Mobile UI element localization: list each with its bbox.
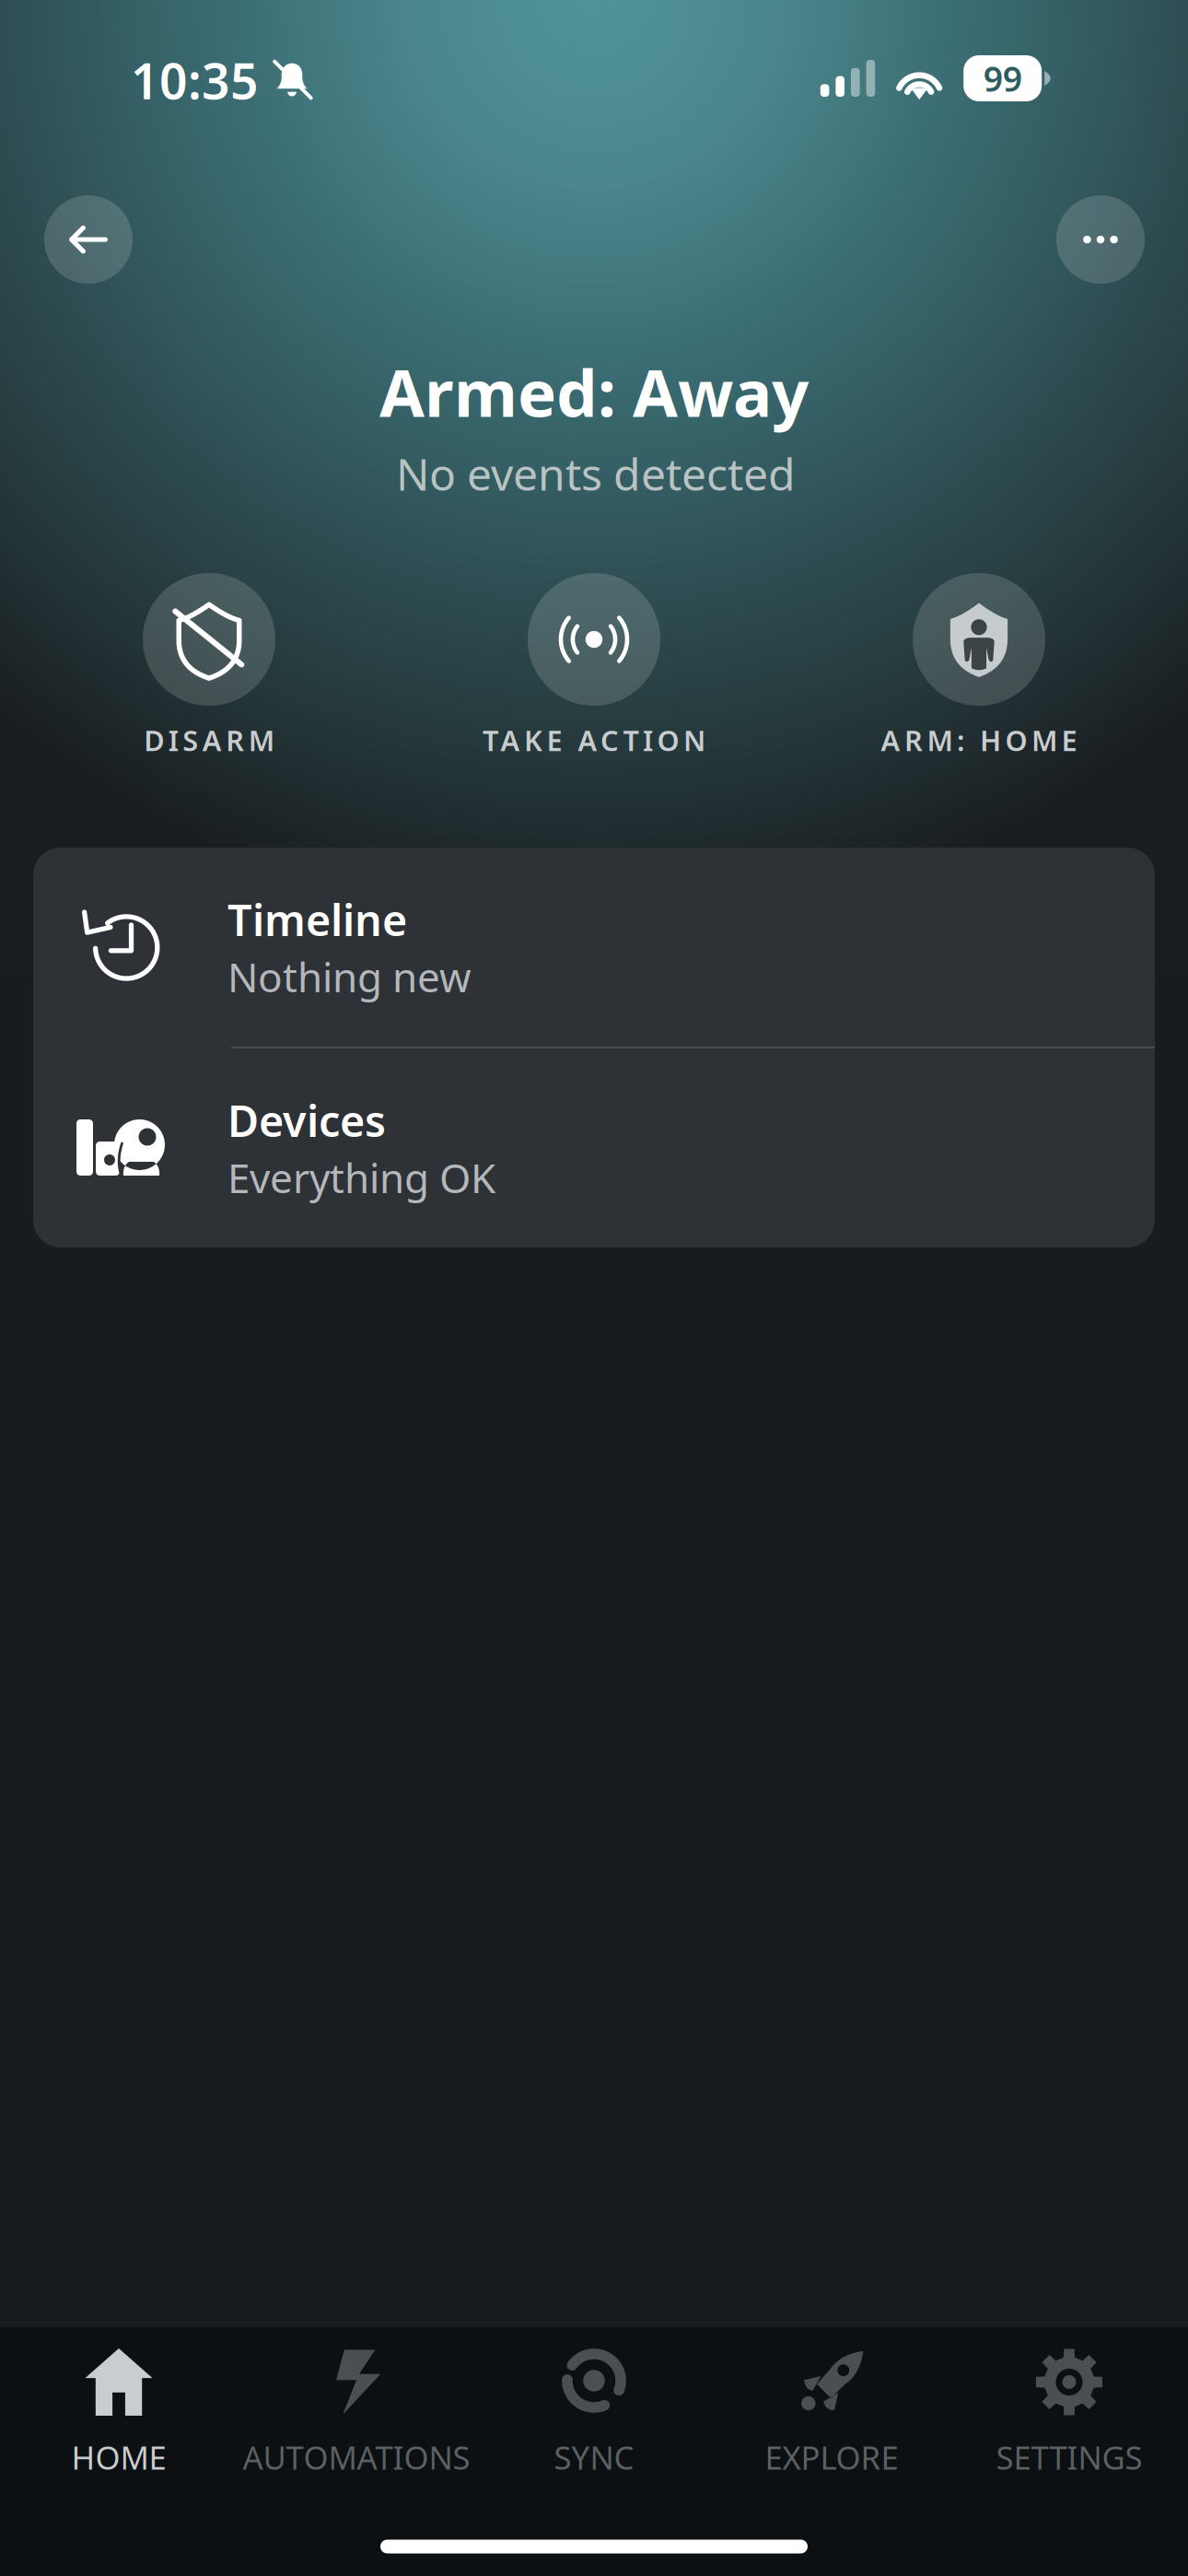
staticText: SETTINGS: [996, 2436, 1142, 2478]
staticText: DISARM: [144, 721, 274, 759]
button[interactable]: More options: [1056, 195, 1145, 284]
staticText: SYNC: [554, 2436, 634, 2478]
staticText: Timeline: [227, 891, 407, 948]
button[interactable]: HOME: [0, 2327, 238, 2576]
staticText: No events detected: [396, 444, 796, 503]
staticText: HOME: [71, 2436, 166, 2478]
button[interactable]: Devices: [33, 1048, 1155, 1247]
staticText: TAKE ACTION: [483, 721, 705, 759]
staticText: 10:35: [131, 48, 259, 113]
button[interactable]: DISARM: [17, 573, 402, 785]
button[interactable]: SYNC: [475, 2327, 713, 2576]
button[interactable]: AUTOMATIONS: [238, 2327, 475, 2576]
button[interactable]: Timeline: [33, 848, 1155, 1047]
button[interactable]: Back: [44, 195, 133, 284]
button[interactable]: SETTINGS: [950, 2327, 1188, 2576]
staticText: Everything OK: [227, 1151, 495, 1204]
button[interactable]: TAKE ACTION: [402, 573, 786, 785]
button[interactable]: EXPLORE: [713, 2327, 950, 2576]
staticText: Nothing new: [227, 950, 472, 1003]
staticText: EXPLORE: [765, 2436, 898, 2478]
staticText: Devices: [227, 1092, 386, 1149]
staticText: ARM: HOME: [881, 721, 1077, 759]
staticText: Armed: Away: [379, 348, 809, 435]
staticText: 99: [983, 55, 1022, 101]
button[interactable]: ARM: HOME: [786, 573, 1171, 785]
staticText: AUTOMATIONS: [243, 2436, 470, 2478]
